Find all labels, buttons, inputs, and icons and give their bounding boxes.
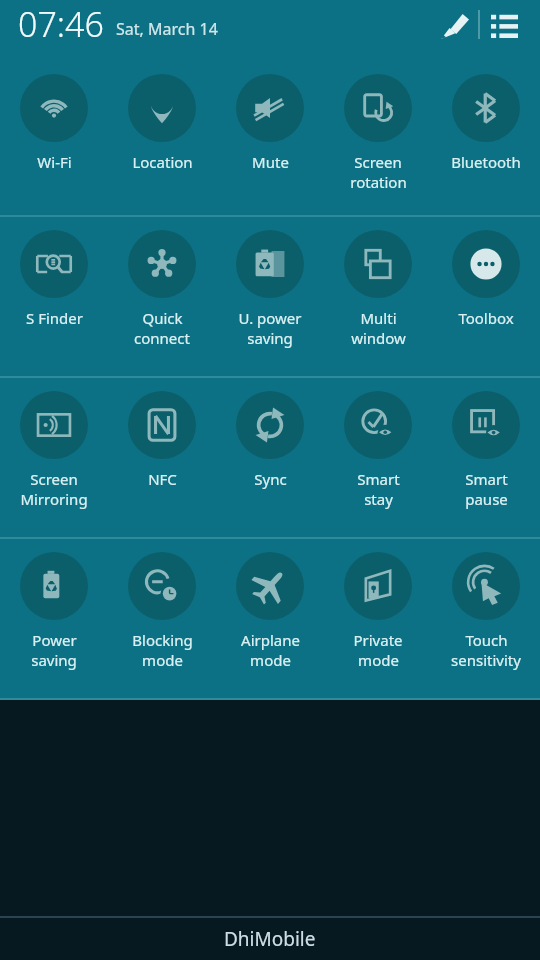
button[interactable]: Airplane [216, 539, 324, 670]
button[interactable]: S Finder [0, 217, 108, 328]
staticText: Airplane [241, 630, 300, 650]
staticText: Mute [252, 152, 289, 172]
staticText: Location [132, 152, 193, 172]
staticText: Toolbox [458, 308, 514, 328]
button[interactable]: Bluetooth [432, 68, 540, 172]
staticText: stay [364, 489, 393, 509]
staticText: Sync [254, 469, 287, 489]
staticText: Blocking [132, 630, 193, 650]
staticText: mode [250, 650, 291, 670]
staticText: NFC [148, 469, 177, 489]
staticText: S Finder [26, 308, 83, 328]
button[interactable]: Screen [324, 68, 432, 192]
button[interactable]: Smart [432, 378, 540, 509]
button[interactable]: Smart [324, 378, 432, 509]
staticText: mode [358, 650, 399, 670]
staticText: Private [353, 630, 403, 650]
staticText: saving [31, 650, 77, 670]
button[interactable]: Quick [108, 217, 216, 348]
button[interactable]: Wi-Fi [0, 68, 108, 172]
button[interactable]: NFC [108, 378, 216, 489]
button[interactable]: Screen [0, 378, 108, 509]
staticText: pause [465, 489, 508, 509]
staticText: Quick [142, 308, 183, 328]
button[interactable]: Edit quick settings [430, 0, 478, 48]
button[interactable]: Touch [432, 539, 540, 670]
button[interactable]: Private [324, 539, 432, 670]
staticText: Screen [30, 469, 78, 489]
staticText: Touch [465, 630, 508, 650]
button[interactable]: Toolbox [432, 217, 540, 328]
staticText: sensitivity [451, 650, 521, 670]
button[interactable]: U. power [216, 217, 324, 348]
staticText: 07:46 [18, 1, 104, 47]
staticText: Power [32, 630, 77, 650]
button[interactable]: Mute [216, 68, 324, 172]
button[interactable]: Blocking [108, 539, 216, 670]
button[interactable]: Location [108, 68, 216, 172]
button[interactable]: Power [0, 539, 108, 670]
staticText: rotation [350, 172, 407, 192]
staticText: Multi [360, 308, 397, 328]
staticText: connect [134, 328, 190, 348]
staticText: mode [142, 650, 183, 670]
staticText: saving [247, 328, 293, 348]
staticText: Smart [465, 469, 508, 489]
staticText: U. power [238, 308, 302, 328]
button[interactable]: Multi [324, 217, 432, 348]
staticText: Wi-Fi [37, 152, 72, 172]
staticText: Mirroring [20, 489, 88, 509]
staticText: Bluetooth [451, 152, 521, 172]
staticText: Sat, March 14 [116, 18, 218, 40]
button[interactable]: Show all settings [480, 0, 528, 48]
staticText: DhiMobile [224, 926, 316, 952]
staticText: window [351, 328, 406, 348]
button[interactable]: Sync [216, 378, 324, 489]
staticText: Smart [357, 469, 400, 489]
staticText: Screen [354, 152, 402, 172]
